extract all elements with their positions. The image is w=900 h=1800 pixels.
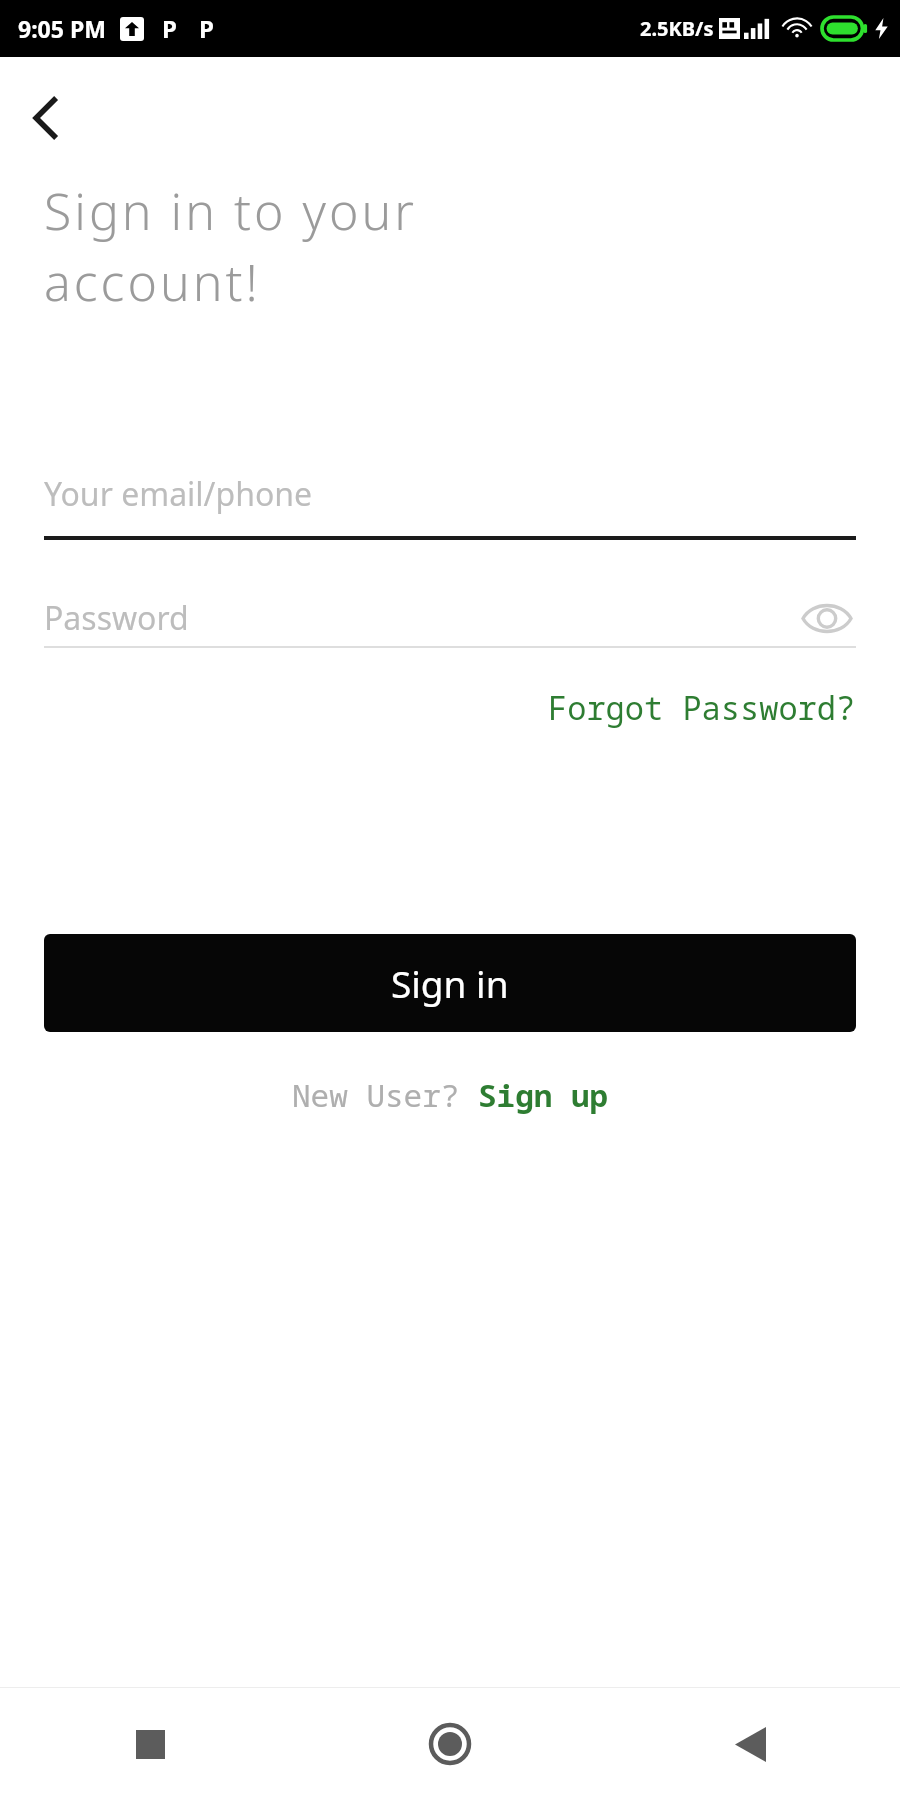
button[interactable]: Your email/phone <box>44 466 856 540</box>
button[interactable]: Forgot Password? <box>548 678 856 738</box>
staticText: 2.5KB/s <box>640 15 714 42</box>
button[interactable]: Password <box>44 590 856 648</box>
staticText: Sign in <box>391 958 509 1008</box>
staticText: P <box>199 12 214 45</box>
staticText: Sign up <box>478 1074 609 1116</box>
button[interactable]: Back <box>600 1688 900 1800</box>
button[interactable]: Home <box>300 1688 600 1800</box>
button[interactable]: Show password <box>798 590 856 646</box>
staticText: Forgot Password? <box>548 686 856 730</box>
staticText: New User? <box>292 1074 478 1116</box>
staticText: Your email/phone <box>44 472 313 516</box>
button[interactable]: Back <box>14 85 80 151</box>
button[interactable]: New User? <box>0 1074 900 1116</box>
button[interactable]: Sign in <box>44 934 856 1032</box>
staticText: 9:05 PM <box>18 13 106 44</box>
staticText: Sign in to your account! <box>44 177 417 316</box>
staticText: Password <box>44 596 798 640</box>
button[interactable]: Recent apps <box>0 1688 300 1800</box>
staticText: P <box>162 12 177 45</box>
